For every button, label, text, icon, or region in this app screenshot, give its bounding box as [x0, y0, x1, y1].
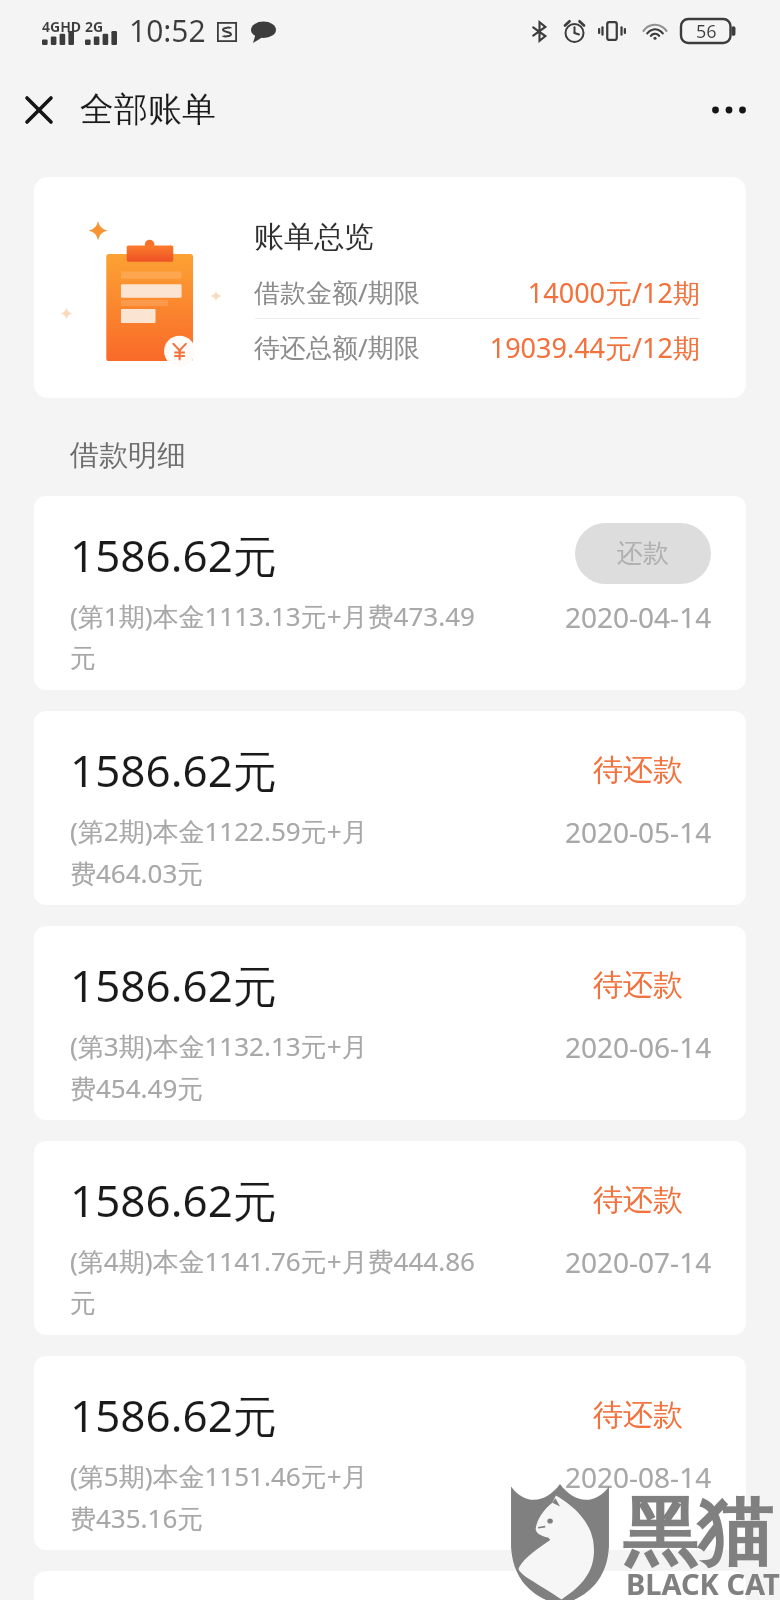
staticText: 2020-07-14	[565, 1243, 712, 1281]
staticText: 待还款	[593, 1396, 683, 1434]
button[interactable]: More options	[703, 84, 755, 136]
staticText: 10:52	[129, 10, 206, 51]
staticText: 2020-05-14	[565, 813, 712, 851]
staticText: (第1期)本金1113.13元+月费473.49 元	[70, 598, 475, 674]
staticText: 黑猫	[622, 1486, 772, 1580]
button[interactable]: 1586.62元	[34, 1571, 746, 1600]
staticText: 2020-04-14	[565, 598, 712, 636]
staticText: 56	[696, 19, 717, 43]
button[interactable]: 1586.62元	[34, 926, 746, 1120]
staticText: 1586.62元	[70, 1385, 277, 1445]
staticText: 19039.44元/12期	[489, 329, 700, 366]
button[interactable]: Close	[13, 84, 65, 136]
staticText: 还款	[617, 537, 669, 570]
button[interactable]: 1586.62元	[34, 1141, 746, 1335]
button[interactable]: 1586.62元	[34, 711, 746, 905]
staticText: 2G	[85, 17, 145, 36]
staticText: 2020-06-14	[565, 1028, 712, 1066]
staticText: 待还总额/期限	[254, 329, 420, 365]
staticText: (第2期)本金1122.59元+月 费464.03元	[70, 813, 368, 891]
staticText: 借款金额/期限	[254, 274, 420, 310]
staticText: 14000元/12期	[527, 274, 700, 311]
staticText: 1586.62元	[70, 740, 277, 800]
button[interactable]: 1586.62元	[34, 496, 746, 690]
button[interactable]: 1586.62元	[34, 1356, 746, 1550]
staticText: (第4期)本金1141.76元+月费444.86 元	[70, 1243, 475, 1319]
staticText: 2020-08-14	[565, 1458, 712, 1496]
staticText: 借款明细	[70, 437, 186, 474]
staticText: 待还款	[593, 1181, 683, 1219]
staticText: 4GHD	[42, 17, 102, 36]
staticText: BLACK CAT	[626, 1564, 780, 1600]
staticText: 待还款	[593, 751, 683, 789]
staticText: (第3期)本金1132.13元+月 费454.49元	[70, 1028, 368, 1106]
staticText: 1586.62元	[70, 1170, 277, 1230]
button[interactable]: 还款	[575, 523, 711, 584]
staticText: 全部账单	[80, 88, 216, 131]
staticText: (第5期)本金1151.46元+月 费435.16元	[70, 1458, 368, 1536]
staticText: 待还款	[593, 966, 683, 1004]
staticText: 账单总览	[254, 218, 374, 256]
staticText: 1586.62元	[70, 525, 277, 585]
staticText: 1586.62元	[70, 955, 277, 1015]
